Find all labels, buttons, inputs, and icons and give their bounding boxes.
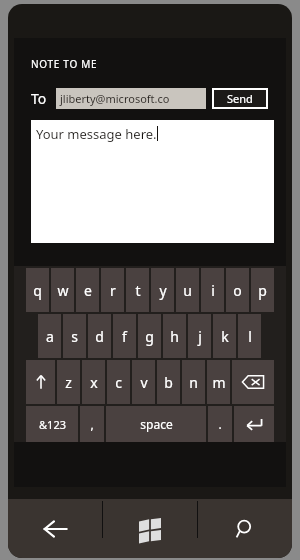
button[interactable]: g (138, 314, 161, 358)
staticText: w (57, 281, 69, 300)
button[interactable]: Your message here. (31, 120, 274, 243)
staticText: . (218, 416, 222, 432)
button[interactable]: f (113, 314, 136, 358)
button[interactable]: b (157, 360, 180, 404)
button[interactable]: h (163, 314, 186, 358)
button[interactable]: p (251, 268, 274, 312)
staticText: c (115, 373, 122, 392)
staticText: y (159, 281, 167, 300)
button[interactable]: u (176, 268, 199, 312)
button[interactable]: z (57, 360, 80, 404)
button[interactable]: , (80, 406, 104, 442)
button[interactable]: Search (198, 499, 292, 558)
button[interactable]: Shift (26, 360, 55, 404)
button[interactable]: Enter (234, 406, 274, 442)
button[interactable]: m (207, 360, 230, 404)
button[interactable]: t (126, 268, 149, 312)
button[interactable]: Backspace (232, 360, 274, 404)
button[interactable]: i (201, 268, 224, 312)
staticText: x (90, 373, 98, 392)
staticText: k (221, 327, 229, 346)
button[interactable]: v (132, 360, 155, 404)
staticText: m (212, 373, 226, 392)
staticText: f (122, 327, 127, 346)
staticText: s (71, 327, 78, 346)
staticText: n (189, 373, 198, 392)
staticText: b (164, 373, 173, 392)
staticText: i (211, 281, 215, 300)
staticText: z (65, 373, 72, 392)
button[interactable]: o (226, 268, 249, 312)
staticText: l (248, 327, 252, 346)
button[interactable]: k (213, 314, 236, 358)
button[interactable]: n (182, 360, 205, 404)
staticText: v (140, 373, 148, 392)
button[interactable]: Start (103, 499, 197, 558)
button[interactable]: x (82, 360, 105, 404)
button[interactable]: space (106, 406, 206, 442)
staticText: r (110, 281, 116, 300)
button[interactable]: a (38, 314, 61, 358)
button[interactable]: j (188, 314, 211, 358)
button[interactable]: y (151, 268, 174, 312)
button[interactable]: s (63, 314, 86, 358)
button[interactable]: e (76, 268, 99, 312)
staticText: t (135, 281, 141, 300)
staticText: e (84, 281, 92, 300)
staticText: q (33, 281, 42, 300)
staticText: u (183, 281, 192, 300)
staticText: Your message here. (36, 125, 157, 143)
staticText: , (90, 416, 94, 432)
button[interactable]: Back (8, 499, 102, 558)
button[interactable]: d (88, 314, 111, 358)
staticText: jliberty@microsoft.co (60, 91, 170, 106)
button[interactable]: c (107, 360, 130, 404)
staticText: p (258, 281, 267, 300)
staticText: NOTE TO ME (31, 57, 98, 71)
staticText: o (233, 281, 242, 300)
staticText: &123 (39, 417, 66, 432)
button[interactable]: &123 (26, 406, 78, 442)
button[interactable]: Send (214, 90, 266, 107)
staticText: j (198, 327, 202, 346)
button[interactable]: q (26, 268, 49, 312)
staticText: h (170, 327, 179, 346)
button[interactable]: w (51, 268, 74, 312)
other: Enter (245, 417, 263, 431)
button[interactable]: jliberty@microsoft.co (56, 88, 206, 109)
button[interactable]: l (238, 314, 261, 358)
button[interactable]: . (208, 406, 232, 442)
other: Shift (33, 374, 49, 390)
staticText: space (140, 416, 173, 432)
staticText: g (145, 327, 154, 346)
staticText: To (31, 89, 47, 108)
staticText: d (95, 327, 104, 346)
button[interactable]: r (101, 268, 124, 312)
staticText: a (46, 327, 54, 346)
staticText: Send (227, 91, 253, 106)
other: Backspace (242, 375, 264, 389)
